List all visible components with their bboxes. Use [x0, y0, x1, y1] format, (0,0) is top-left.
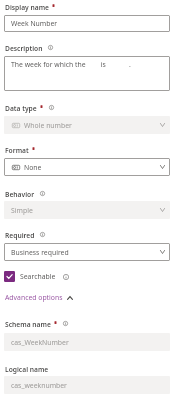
staticText: Required — [5, 231, 35, 240]
button[interactable]: Business required — [4, 243, 170, 261]
staticText: Display name — [5, 3, 49, 12]
staticText: None — [24, 163, 42, 172]
button[interactable]: cas_weeknumber — [4, 376, 170, 394]
staticText: Week Number — [11, 19, 58, 28]
staticText: Business required — [11, 248, 69, 257]
staticText: Searchable — [20, 272, 56, 281]
button[interactable]: Advanced options — [5, 293, 73, 302]
button[interactable]: cas_WeekNumber — [4, 333, 170, 351]
button[interactable]: Week Number — [4, 15, 170, 32]
button[interactable]: Searchable — [4, 271, 69, 282]
staticText: Format — [5, 146, 29, 155]
staticText: Whole number — [24, 121, 72, 130]
button[interactable]: None — [4, 158, 170, 176]
button[interactable]: Simple — [4, 201, 170, 219]
staticText: cas_weeknumber — [11, 381, 67, 390]
staticText: Schema name — [5, 320, 51, 329]
staticText: Data type — [5, 104, 37, 113]
staticText: Logical name — [5, 365, 49, 374]
staticText: The week for which the is . — [11, 60, 131, 69]
staticText: Description — [5, 44, 43, 53]
staticText: Simple — [11, 206, 33, 215]
staticText: cas_WeekNumber — [11, 338, 69, 347]
staticText: Behavior — [5, 190, 35, 199]
button[interactable]: The week for which the is . — [4, 56, 170, 91]
staticText: Advanced options — [5, 293, 63, 302]
button[interactable]: Whole number — [4, 116, 170, 134]
